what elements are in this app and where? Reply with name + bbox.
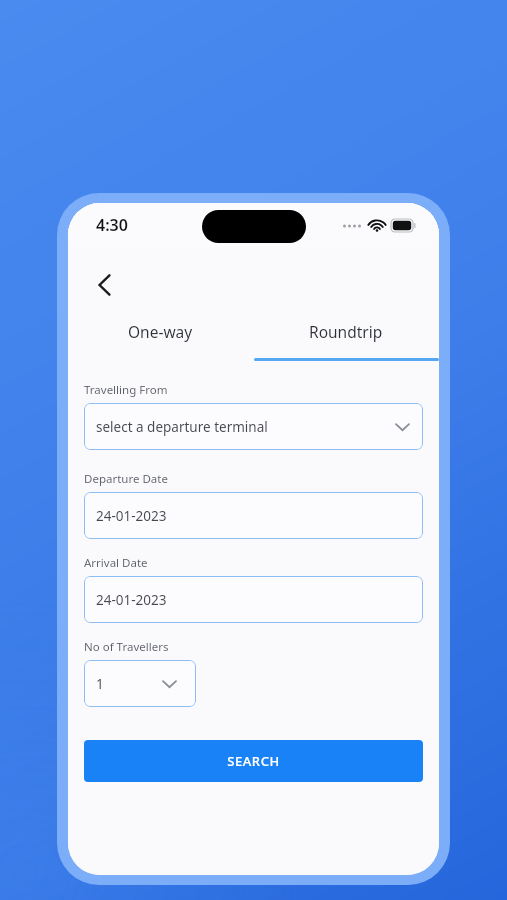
button[interactable]: 24-01-2023 <box>84 492 423 539</box>
button[interactable]: Roundtrip <box>253 311 439 351</box>
button[interactable]: select a departure terminal <box>84 403 423 450</box>
button[interactable]: 1 <box>84 660 196 707</box>
button[interactable]: SEARCH <box>84 740 423 782</box>
staticText: Travelling From <box>84 382 168 398</box>
staticText: Departure Date <box>84 471 168 487</box>
button[interactable]: Back <box>84 265 124 305</box>
staticText: Arrival Date <box>84 555 148 571</box>
button[interactable]: One-way <box>68 311 253 351</box>
staticText: Roundtrip <box>309 321 383 342</box>
staticText: SEARCH <box>227 752 280 770</box>
staticText: One-way <box>128 321 193 342</box>
staticText: 24-01-2023 <box>96 591 167 609</box>
staticText: No of Travellers <box>84 639 169 655</box>
staticText: 4:30 <box>96 214 128 236</box>
button[interactable]: 24-01-2023 <box>84 576 423 623</box>
staticText: 24-01-2023 <box>96 507 167 525</box>
staticText: select a departure terminal <box>96 418 268 436</box>
staticText: 1 <box>96 675 104 693</box>
